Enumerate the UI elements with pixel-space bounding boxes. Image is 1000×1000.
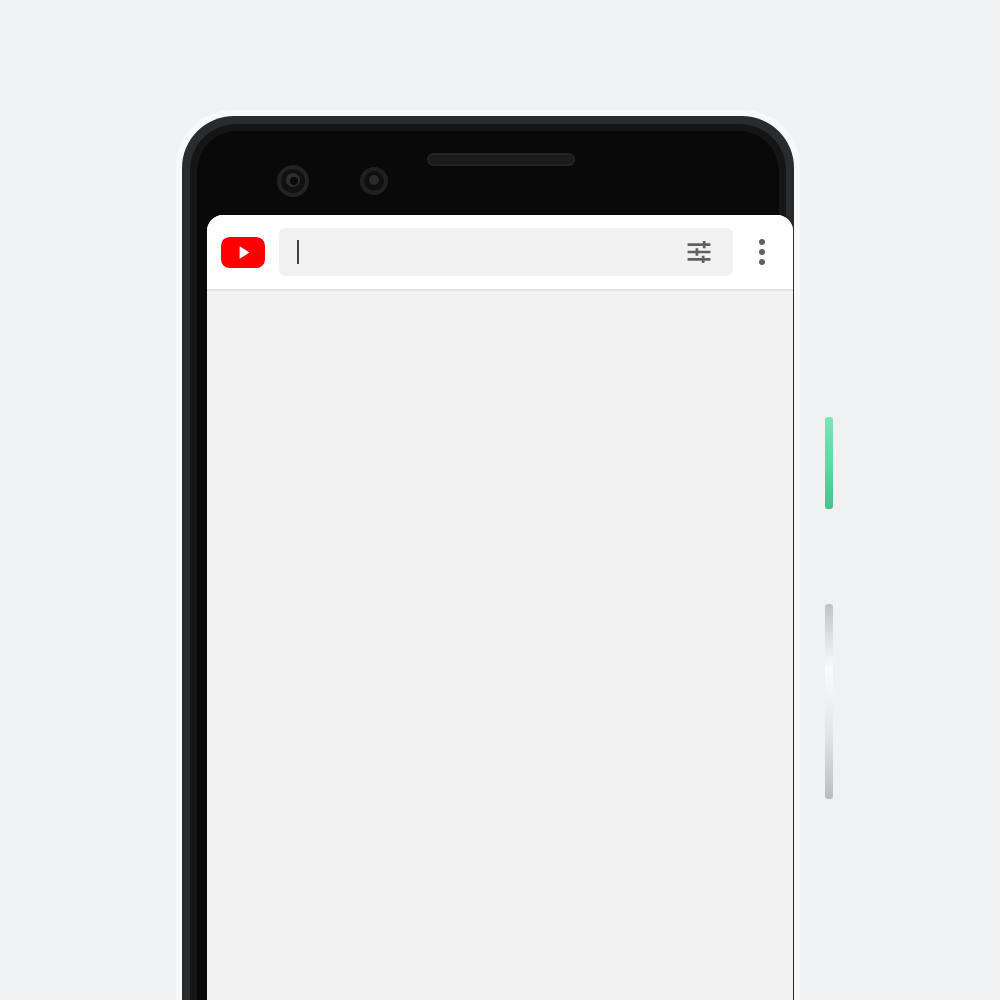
button[interactable]: Search (279, 228, 733, 276)
button[interactable]: Power button (825, 417, 833, 509)
button[interactable]: More options (739, 229, 785, 275)
button[interactable]: YouTube home (217, 230, 269, 274)
button[interactable]: Search filters (679, 232, 719, 272)
button[interactable]: Volume button (825, 604, 833, 799)
